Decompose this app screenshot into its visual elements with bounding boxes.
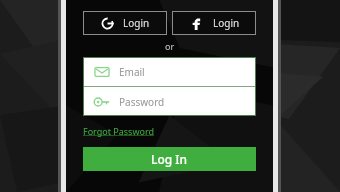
- button[interactable]: Password: [83, 87, 256, 116]
- button[interactable]: Email: [83, 57, 256, 86]
- staticText: Email: [119, 65, 145, 79]
- button[interactable]: Login: [83, 11, 167, 35]
- staticText: Password: [119, 95, 165, 109]
- staticText: or: [165, 40, 175, 52]
- staticText: Log In: [151, 151, 188, 167]
- staticText: Login: [213, 16, 240, 30]
- button[interactable]: Log In: [83, 147, 256, 171]
- staticText: Login: [123, 16, 150, 30]
- button[interactable]: Forgot Password: [83, 125, 155, 137]
- button[interactable]: Login: [172, 11, 256, 35]
